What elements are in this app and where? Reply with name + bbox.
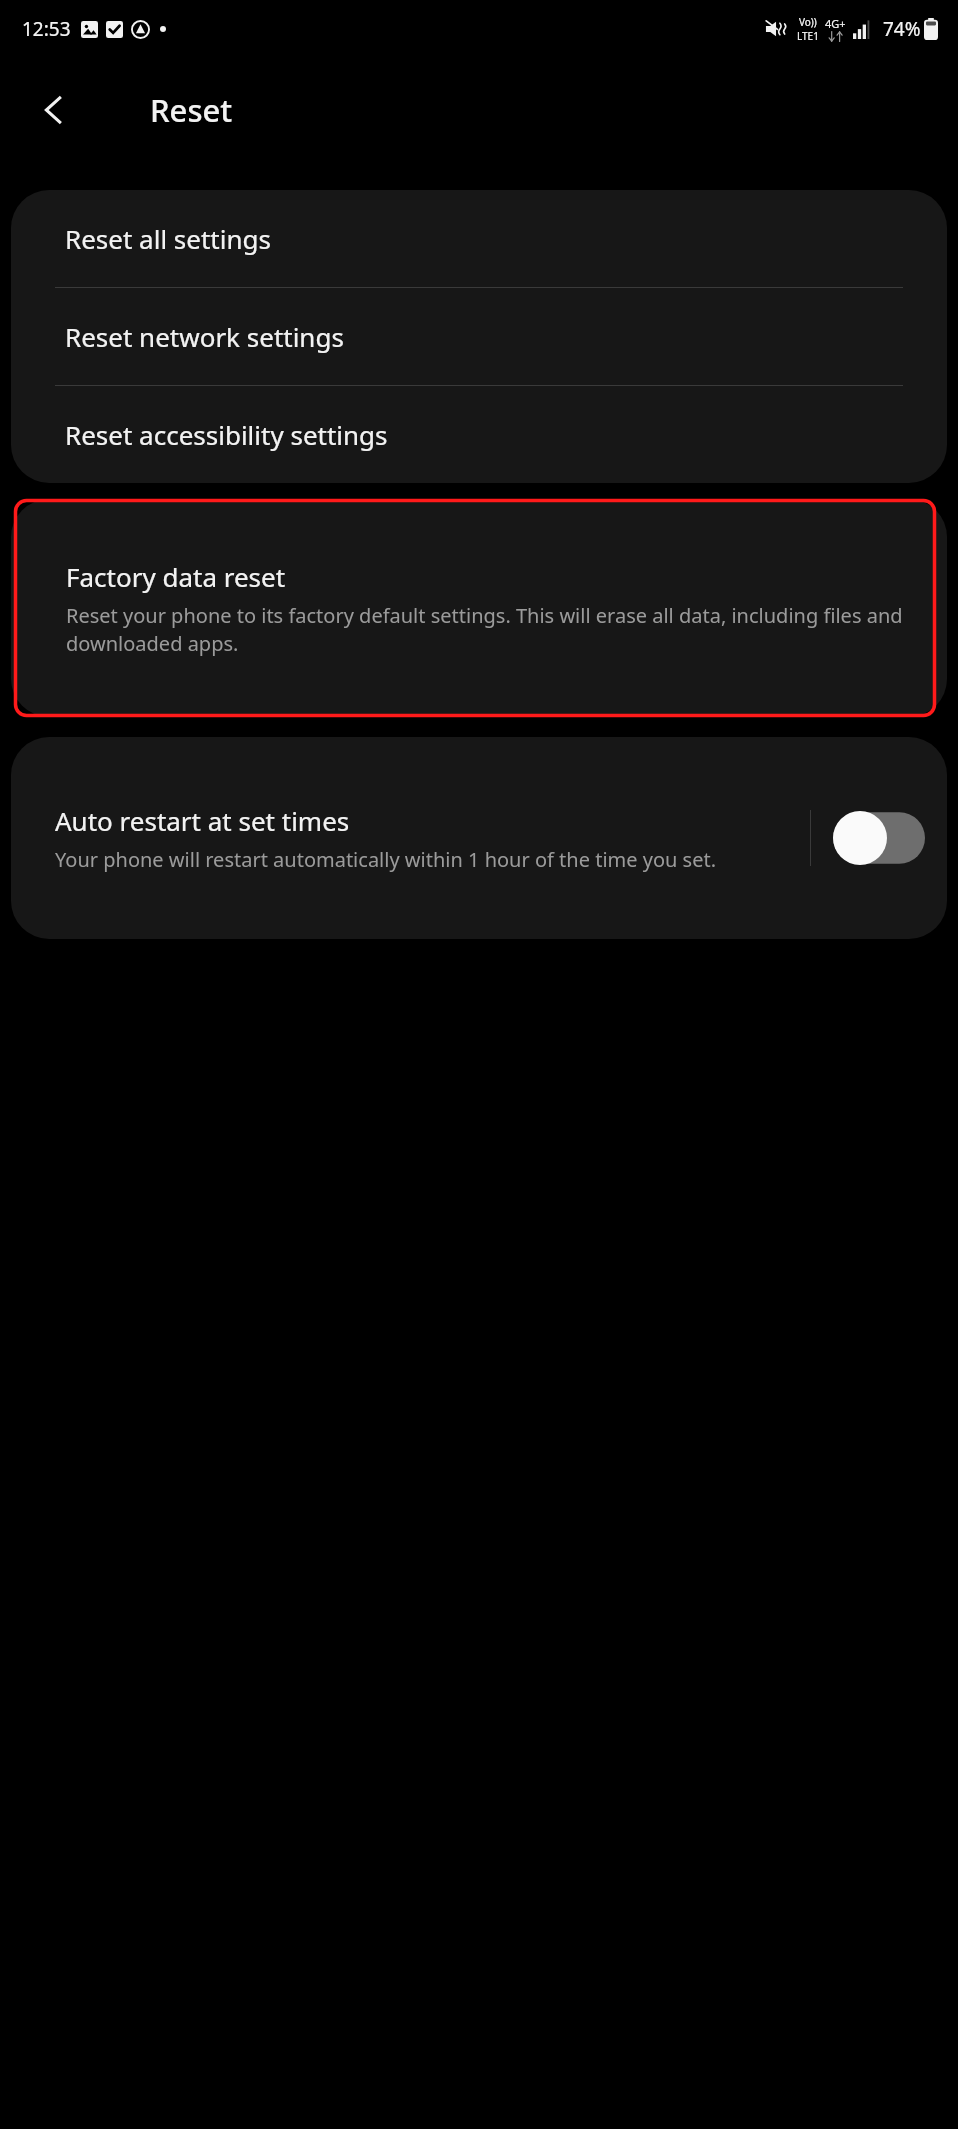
staticText: Reset your phone to its factory default … bbox=[66, 602, 906, 657]
button[interactable]: Auto restart toggle bbox=[833, 811, 925, 865]
button[interactable]: Back bbox=[26, 82, 82, 138]
staticText: Factory data reset bbox=[66, 559, 286, 594]
staticText: 74% bbox=[883, 16, 921, 42]
staticText: Auto restart at set times bbox=[55, 803, 350, 838]
button[interactable]: Reset all settings bbox=[11, 190, 947, 287]
staticText: Reset all settings bbox=[65, 221, 271, 256]
button[interactable]: Auto restart at set times bbox=[11, 737, 947, 939]
button[interactable]: Factory data reset bbox=[14, 499, 936, 717]
staticText: Your phone will restart automatically wi… bbox=[55, 846, 717, 873]
staticText: 12:53 bbox=[22, 16, 71, 42]
staticText: Vo)) bbox=[799, 15, 817, 29]
staticText: Reset accessibility settings bbox=[65, 417, 388, 452]
staticText: 4G+ bbox=[825, 16, 846, 31]
staticText: Reset bbox=[150, 89, 233, 131]
button[interactable]: Reset network settings bbox=[11, 288, 947, 385]
button[interactable]: Reset accessibility settings bbox=[11, 386, 947, 483]
staticText: LTE1 bbox=[797, 29, 819, 43]
staticText: Reset network settings bbox=[65, 319, 344, 354]
